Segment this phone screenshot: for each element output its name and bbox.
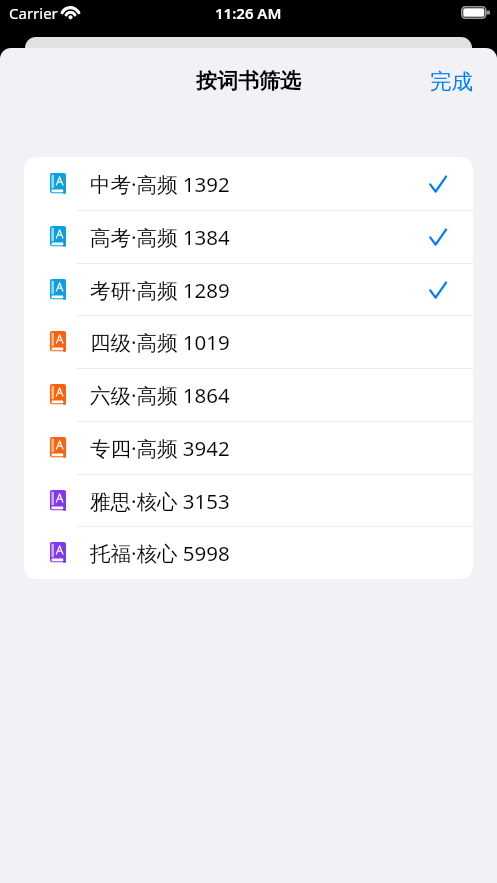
other: Selected bbox=[429, 281, 447, 299]
button[interactable]: 完成 bbox=[406, 48, 497, 114]
staticText: Carrier bbox=[9, 3, 58, 23]
other: Selected bbox=[429, 175, 447, 193]
staticText: 11:26 AM bbox=[215, 3, 282, 23]
staticText: 完成 bbox=[430, 68, 473, 95]
button[interactable]: 专四·高频 3942 bbox=[24, 421, 473, 474]
staticText: 按词书筛选 bbox=[196, 68, 301, 94]
staticText: 高考·高频 1384 bbox=[90, 223, 230, 251]
button[interactable]: 中考·高频 1392 bbox=[24, 157, 473, 210]
staticText: 六级·高频 1864 bbox=[90, 381, 230, 409]
button[interactable]: 雅思·核心 3153 bbox=[24, 474, 473, 527]
staticText: 考研·高频 1289 bbox=[90, 276, 230, 304]
button[interactable]: 托福·核心 5998 bbox=[24, 526, 473, 579]
staticText: 专四·高频 3942 bbox=[90, 434, 230, 462]
button[interactable]: 六级·高频 1864 bbox=[24, 368, 473, 421]
staticText: 雅思·核心 3153 bbox=[90, 487, 230, 515]
staticText: 托福·核心 5998 bbox=[90, 539, 230, 567]
button[interactable]: 高考·高频 1384 bbox=[24, 210, 473, 263]
other: Selected bbox=[429, 228, 447, 246]
button[interactable]: 考研·高频 1289 bbox=[24, 263, 473, 316]
staticText: 中考·高频 1392 bbox=[90, 170, 230, 198]
button[interactable]: 四级·高频 1019 bbox=[24, 315, 473, 368]
staticText: 四级·高频 1019 bbox=[90, 328, 230, 356]
